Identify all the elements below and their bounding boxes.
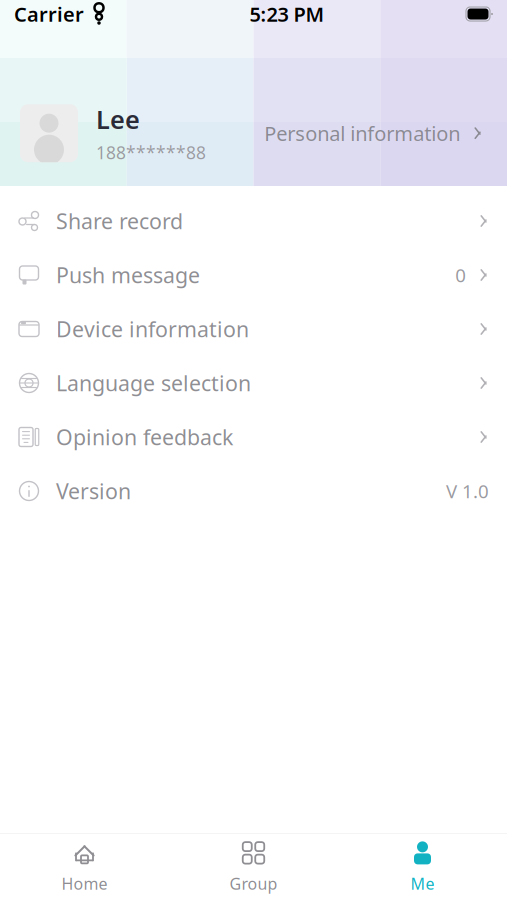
button[interactable]: Push message <box>0 248 507 302</box>
button[interactable]: Device information <box>0 302 507 356</box>
staticText: 5:23 PM <box>249 1 324 27</box>
staticText: Personal information <box>264 120 460 146</box>
button[interactable]: Language selection <box>0 356 507 410</box>
staticText: Version <box>56 477 131 505</box>
staticText: Opinion feedback <box>56 423 233 451</box>
button[interactable]: Home <box>0 834 169 900</box>
staticText: V 1.0 <box>446 479 489 503</box>
staticText: Share record <box>56 207 183 235</box>
staticText: Home <box>61 873 107 894</box>
button[interactable]: Personal information <box>260 110 487 156</box>
staticText: 0 <box>455 263 466 287</box>
staticText: Device information <box>56 315 249 343</box>
button[interactable]: Opinion feedback <box>0 410 507 464</box>
button[interactable]: Group <box>169 834 338 900</box>
staticText: Group <box>229 873 277 894</box>
staticText: Language selection <box>56 369 251 397</box>
button[interactable]: Me <box>338 834 507 900</box>
staticText: Lee <box>96 102 140 136</box>
staticText: Carrier <box>14 1 84 27</box>
staticText: Me <box>410 873 434 894</box>
button[interactable]: Version <box>0 464 507 518</box>
staticText: Push message <box>56 261 200 289</box>
button[interactable]: Share record <box>0 194 507 248</box>
staticText: 188******88 <box>96 141 206 164</box>
